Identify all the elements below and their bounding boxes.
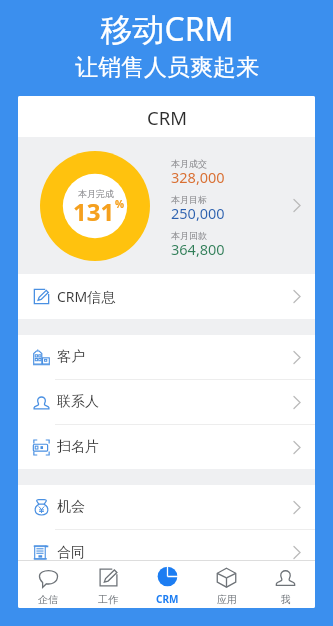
button[interactable]: 扫名片 [18,425,315,469]
button[interactable]: CRM信息 [18,274,315,319]
button[interactable]: 工作 [78,561,138,608]
staticText: CRM信息 [57,287,116,306]
button[interactable]: 应用 [197,561,256,608]
staticText: 本月成交 [171,158,207,169]
staticText: 328,000 [171,167,225,187]
staticText: % [115,197,125,211]
button[interactable]: 企信 [18,561,78,608]
staticText: 企信 [38,593,58,606]
staticText: 合同 [57,544,85,562]
staticText: 机会 [57,498,85,516]
staticText: CRM [147,105,187,130]
button[interactable]: 联系人 [18,380,315,424]
staticText: 工作 [98,593,118,606]
staticText: CRM [156,592,179,606]
button[interactable]: 客户 [18,335,315,379]
staticText: 应用 [217,593,237,606]
staticText: 本月回款 [171,230,207,241]
staticText: 250,000 [171,203,225,223]
staticText: 移动CRM [100,7,234,51]
staticText: 扫名片 [57,438,99,456]
staticText: 客户 [57,348,85,366]
staticText: 本月完成 [78,188,114,199]
staticText: 本月目标 [171,194,207,205]
staticText: 364,800 [171,239,225,259]
button[interactable]: 我 [256,561,315,608]
staticText: 131 [73,195,115,228]
staticText: 让销售人员爽起来 [75,53,259,82]
button[interactable]: 合同 [18,530,315,575]
button[interactable]: CRM [138,561,197,608]
button[interactable]: 机会 [18,485,315,529]
staticText: 联系人 [57,393,99,411]
staticText: 我 [281,593,291,606]
